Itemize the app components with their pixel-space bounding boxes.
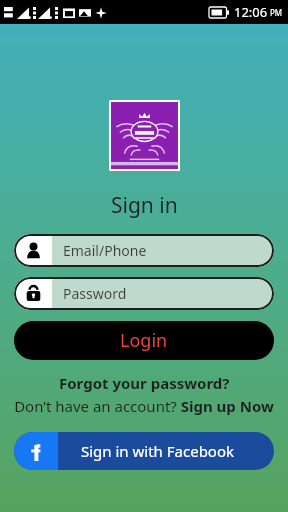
button[interactable]: Password: [14, 277, 274, 310]
button[interactable]: Forgot your password?: [59, 373, 230, 393]
staticText: Email/Phone: [63, 241, 147, 260]
staticText: PM: [270, 7, 283, 18]
button[interactable]: Don’t have an account? Sign up Now: [14, 396, 274, 416]
staticText: Password: [63, 284, 127, 303]
staticText: Sign in with Facebook: [81, 441, 235, 461]
other: Email or phone: [14, 234, 52, 267]
button[interactable]: Email or phone: [14, 234, 274, 267]
staticText: 12:06: [234, 3, 268, 21]
staticText: Login: [120, 328, 168, 353]
button[interactable]: Login: [14, 321, 274, 360]
other: Password: [14, 277, 52, 310]
button[interactable]: Sign in with Facebook: [14, 432, 274, 470]
staticText: Sign in: [111, 191, 178, 220]
